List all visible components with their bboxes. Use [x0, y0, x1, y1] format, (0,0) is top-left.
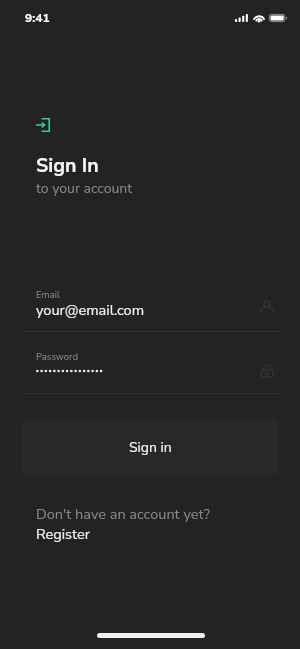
button[interactable]: Email	[0, 288, 300, 333]
staticText: your@email.com	[36, 300, 145, 320]
staticText: Password	[36, 350, 78, 363]
button[interactable]: Password	[0, 350, 300, 395]
button[interactable]: Register	[36, 524, 90, 544]
staticText: to your account	[36, 179, 133, 198]
staticText: Sign In	[36, 152, 99, 179]
staticText: 9:41	[25, 10, 50, 26]
button[interactable]: Sign in	[21, 419, 279, 476]
staticText: Don't have an account yet?	[36, 504, 210, 524]
button[interactable]: Sign in	[36, 118, 50, 132]
staticText: Sign in	[129, 438, 172, 457]
staticText: Email	[36, 288, 60, 301]
